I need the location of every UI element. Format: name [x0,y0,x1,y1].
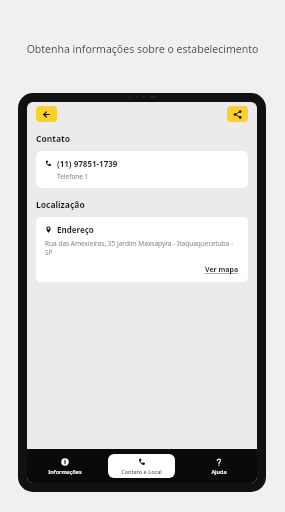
staticText: Telefone 1 [57,172,89,181]
button[interactable]: Voltar [36,106,57,122]
staticText: Ver mapa [205,265,239,275]
staticText: Informações [48,468,82,475]
staticText: Contato [36,133,71,145]
staticText: Rua das Amexieiras, 35 Jardim Maxsapyra … [45,239,239,257]
button[interactable]: Compartilhar [227,106,248,122]
staticText: Obtenha informações sobre o estabelecime… [26,42,259,56]
button[interactable]: Informações [32,454,98,478]
button[interactable]: (11) 97851-1739 [36,151,248,188]
staticText: Localização [36,199,85,211]
button[interactable]: Endereço [36,217,248,282]
button[interactable]: Ver mapa [205,265,239,275]
button[interactable]: Contato e Local [108,454,175,478]
staticText: Endereço [57,224,94,235]
staticText: (11) 97851-1739 [57,158,118,169]
staticText: Ajuda [211,468,227,475]
button[interactable]: Ajuda [185,454,252,478]
staticText: Contato e Local [121,468,162,475]
